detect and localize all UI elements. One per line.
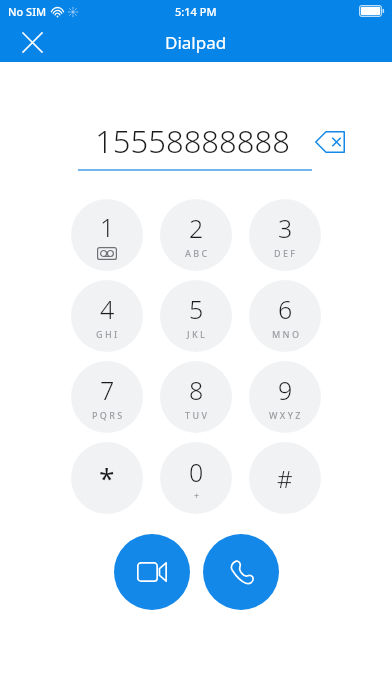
staticText: W X Y Z — [269, 409, 301, 421]
staticText: 4 — [100, 292, 115, 326]
staticText: 8 — [189, 373, 204, 407]
button[interactable]: 2 — [160, 199, 232, 271]
staticText: 6 — [278, 292, 293, 326]
staticText: 2 — [189, 211, 204, 245]
button[interactable]: 4 — [71, 280, 143, 352]
button[interactable]: 9 — [249, 361, 321, 433]
staticText: 7 — [100, 373, 115, 407]
button[interactable]: Call — [203, 534, 279, 610]
button[interactable]: Close — [14, 24, 50, 60]
staticText: P Q R S — [92, 409, 123, 421]
staticText: D E F — [274, 247, 296, 259]
staticText: 3 — [278, 211, 293, 245]
staticText: 0 — [189, 455, 204, 489]
button[interactable]: Video call — [114, 534, 190, 610]
button[interactable]: 5 — [160, 280, 232, 352]
button[interactable]: 1 — [71, 199, 143, 271]
staticText: 5:14 PM — [175, 4, 217, 19]
staticText: T U V — [185, 409, 207, 421]
staticText: M N O — [272, 328, 299, 340]
staticText: 15558888888 — [95, 120, 290, 162]
staticText: A B C — [185, 247, 208, 259]
staticText: 9 — [278, 373, 293, 407]
staticText: 1 — [100, 210, 115, 244]
staticText: Dialpad — [165, 31, 227, 54]
staticText: * — [99, 459, 115, 497]
staticText: G H I — [96, 328, 118, 340]
button[interactable]: Backspace — [308, 125, 352, 159]
button[interactable]: 8 — [160, 361, 232, 433]
button[interactable]: 6 — [249, 280, 321, 352]
button[interactable]: 7 — [71, 361, 143, 433]
button[interactable]: 0 — [160, 442, 232, 514]
staticText: 5 — [189, 292, 204, 326]
button[interactable]: 3 — [249, 199, 321, 271]
staticText: No SIM — [8, 4, 47, 19]
staticText: + — [194, 489, 200, 501]
button[interactable]: * — [71, 442, 143, 514]
staticText: # — [277, 462, 293, 495]
staticText: J K L — [187, 328, 205, 340]
button[interactable]: # — [249, 442, 321, 514]
